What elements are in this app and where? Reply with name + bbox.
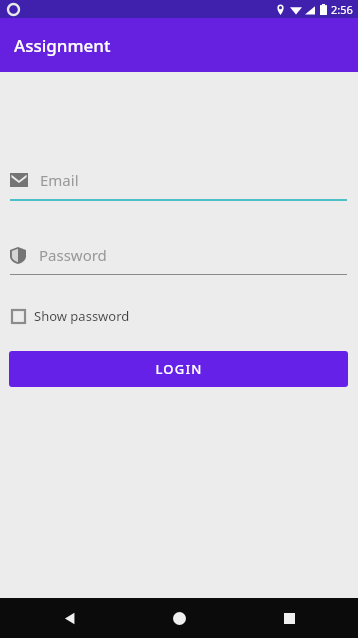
other: Email bbox=[10, 173, 28, 187]
staticText: Password bbox=[39, 245, 107, 265]
staticText: Show password bbox=[34, 307, 130, 325]
button[interactable]: Home bbox=[162, 601, 196, 635]
button[interactable]: Back bbox=[52, 601, 86, 635]
button[interactable]: Email bbox=[10, 170, 347, 190]
button[interactable]: Show password bbox=[11, 307, 130, 325]
button[interactable]: Recent apps bbox=[272, 601, 306, 635]
button[interactable]: LOGIN bbox=[9, 351, 348, 387]
staticText: Email bbox=[40, 170, 79, 190]
other: Password bbox=[10, 247, 26, 264]
staticText: 2:56 bbox=[331, 2, 353, 17]
button[interactable]: Password bbox=[10, 245, 347, 265]
staticText: Assignment bbox=[14, 34, 111, 57]
staticText: LOGIN bbox=[155, 360, 203, 378]
